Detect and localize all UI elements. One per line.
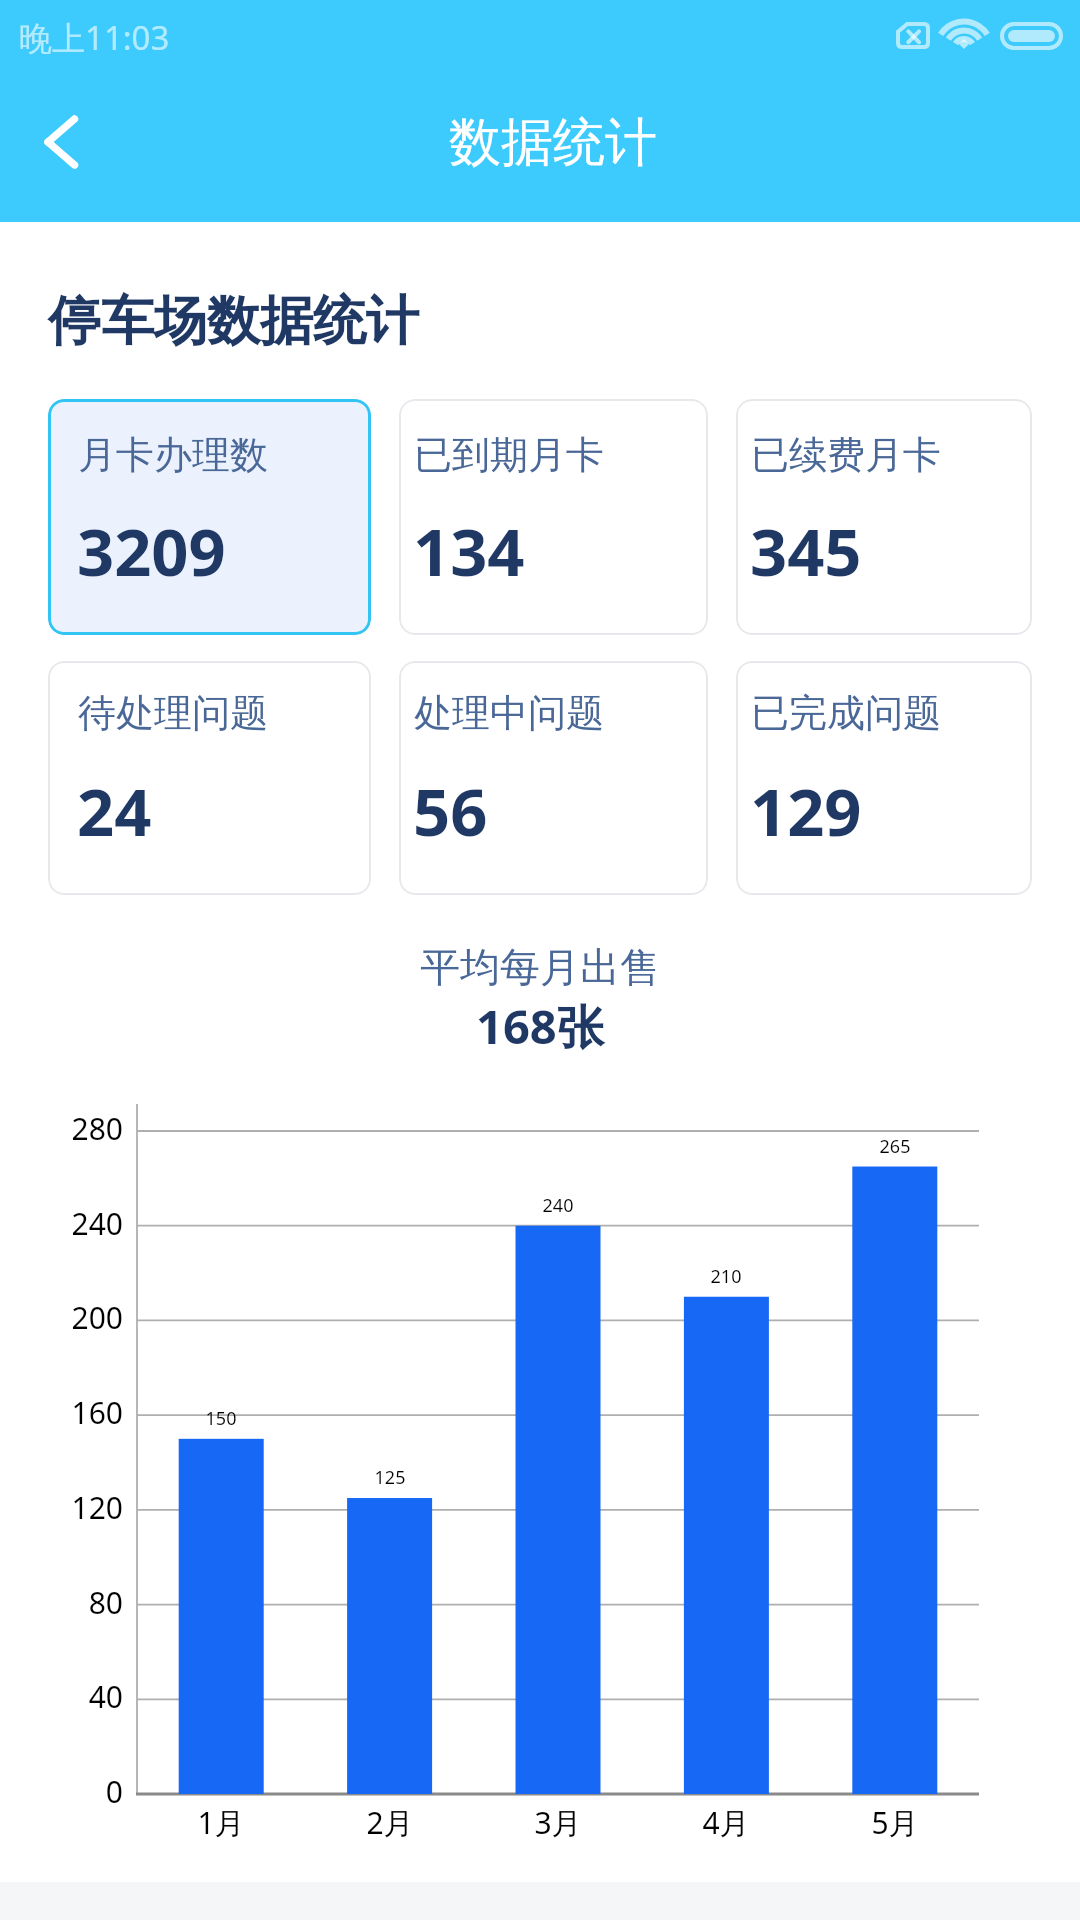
staticText: 40 — [3, 1676, 123, 1717]
staticText: 134 — [413, 507, 525, 596]
staticText: 56 — [413, 767, 488, 856]
staticText: 5月 — [815, 1802, 975, 1843]
staticText: 晚上11:03 — [19, 15, 170, 60]
staticText: 168张 — [476, 994, 604, 1058]
staticText: 3209 — [77, 507, 226, 596]
button[interactable]: 待处理问题 — [48, 661, 371, 895]
button[interactable]: 已完成问题 — [736, 661, 1032, 895]
staticText: 0 — [3, 1771, 123, 1812]
staticText: 3月 — [478, 1802, 638, 1843]
staticText: 280 — [3, 1108, 123, 1149]
staticText: 已续费月卡 — [751, 431, 941, 479]
staticText: 129 — [750, 767, 862, 856]
button[interactable]: 月卡办理数 — [48, 399, 371, 635]
button[interactable]: 已续费月卡 — [736, 399, 1032, 635]
staticText: 4月 — [646, 1802, 806, 1843]
staticText: 月卡办理数 — [78, 431, 268, 479]
staticText: 平均每月出售 — [420, 942, 660, 992]
staticText: 125 — [310, 1465, 470, 1490]
staticText: 345 — [750, 507, 862, 596]
staticText: 265 — [815, 1134, 975, 1159]
staticText: 240 — [478, 1193, 638, 1218]
staticText: 80 — [3, 1582, 123, 1623]
staticText: 24 — [77, 767, 152, 856]
staticText: 200 — [3, 1297, 123, 1338]
staticText: 已完成问题 — [751, 689, 941, 737]
staticText: 处理中问题 — [414, 689, 604, 737]
staticText: 150 — [141, 1406, 301, 1431]
staticText: 已到期月卡 — [414, 431, 604, 479]
staticText: 数据统计 — [449, 110, 657, 176]
staticText: 210 — [646, 1264, 806, 1289]
staticText: 240 — [3, 1203, 123, 1244]
button[interactable]: 已到期月卡 — [399, 399, 708, 635]
staticText: 停车场数据统计 — [48, 288, 419, 355]
staticText: 160 — [3, 1392, 123, 1433]
staticText: 1月 — [141, 1802, 301, 1843]
button[interactable]: 处理中问题 — [399, 661, 708, 895]
button[interactable]: Back — [6, 86, 116, 196]
staticText: 2月 — [310, 1802, 470, 1843]
staticText: 120 — [3, 1487, 123, 1528]
staticText: 待处理问题 — [78, 689, 268, 737]
